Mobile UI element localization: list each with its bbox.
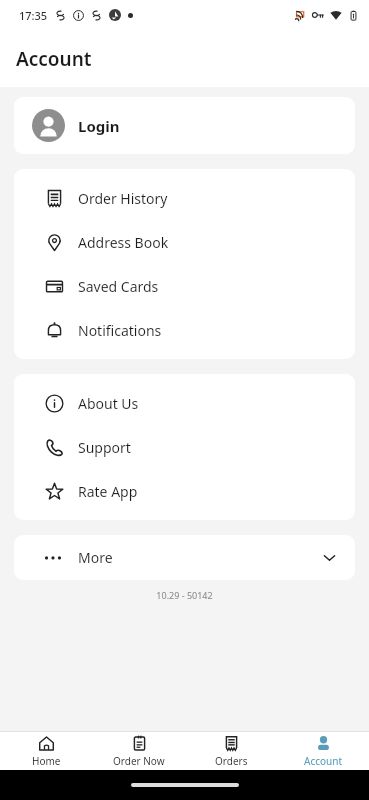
staticText: 17:35: [19, 8, 48, 23]
staticText: Account: [16, 46, 92, 72]
button[interactable]: More: [14, 535, 355, 580]
button[interactable]: Address Book: [14, 220, 355, 264]
staticText: Account: [304, 754, 343, 768]
button[interactable]: About Us: [14, 381, 355, 425]
button[interactable]: Account: [277, 732, 369, 770]
button[interactable]: Support: [14, 425, 355, 469]
button[interactable]: Notifications: [14, 308, 355, 352]
staticText: About Us: [78, 394, 139, 413]
staticText: Order History: [78, 189, 168, 208]
button[interactable]: Orders: [185, 732, 277, 770]
staticText: More: [78, 548, 113, 567]
staticText: Notifications: [78, 321, 162, 340]
button[interactable]: Login: [14, 97, 355, 154]
button[interactable]: Order History: [14, 176, 355, 220]
button[interactable]: Home: [0, 732, 93, 770]
staticText: Rate App: [78, 482, 138, 501]
staticText: Orders: [215, 754, 248, 768]
staticText: Home: [32, 754, 61, 768]
staticText: Order Now: [113, 754, 165, 768]
button[interactable]: Order Now: [93, 732, 185, 770]
staticText: Saved Cards: [78, 277, 159, 296]
staticText: Address Book: [78, 233, 169, 252]
staticText: 10.29 - 50142: [0, 589, 369, 601]
button[interactable]: Saved Cards: [14, 264, 355, 308]
staticText: Login: [78, 116, 120, 136]
button[interactable]: Rate App: [14, 469, 355, 513]
staticText: Support: [78, 438, 131, 457]
